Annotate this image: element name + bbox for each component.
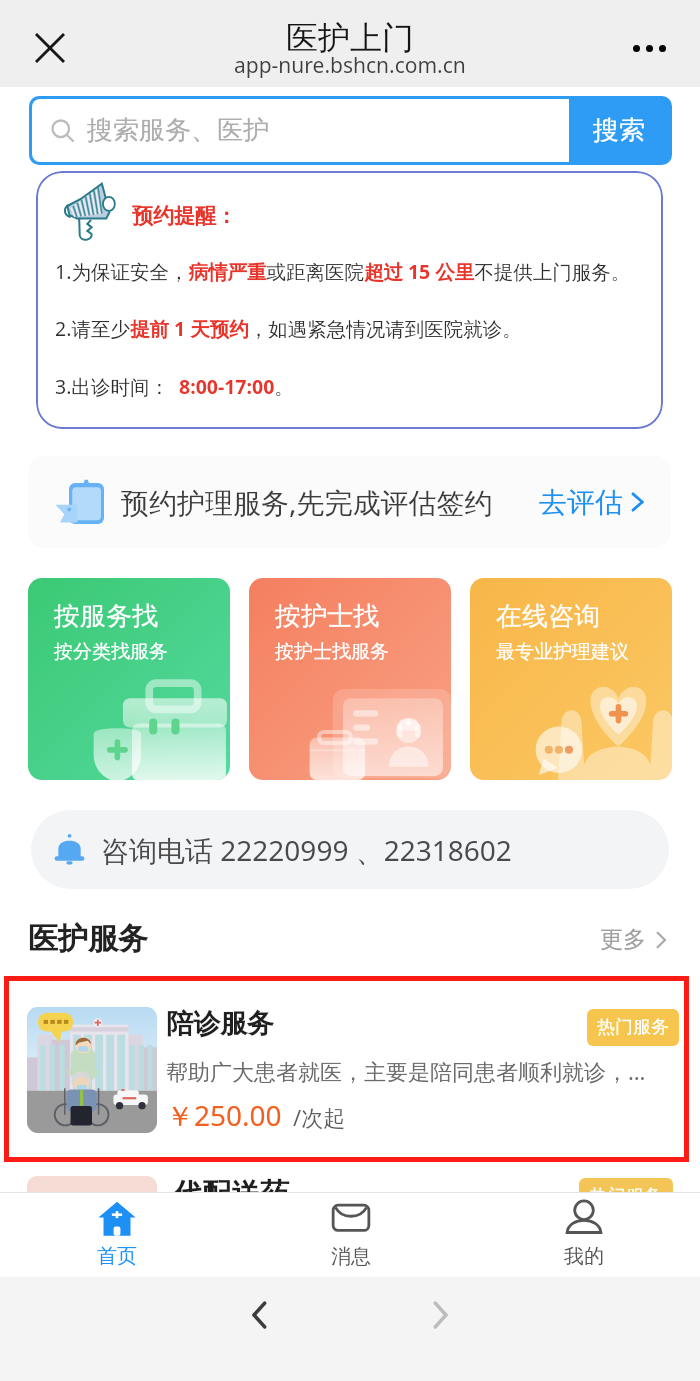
staticText: 医护服务 [28,920,148,958]
button[interactable]: More options [621,20,677,76]
staticText: 热门服务 [590,1185,662,1208]
staticText: app-nure.bshcn.com.cn [234,51,466,80]
staticText: 代配送药 [173,1176,289,1213]
staticText: 我的 [564,1244,604,1269]
button[interactable]: 在线咨询 [470,578,672,780]
staticText: 搜索 [593,114,645,147]
button[interactable]: Forward [410,1285,470,1345]
button[interactable]: 咨询电话 22220999 、22318602 [31,810,669,889]
staticText: 2.请至少提前 1 天预约，如遇紧急情况请到医院就诊。 [55,315,522,342]
staticText: 去评估 [539,485,623,520]
button[interactable]: 消息 [234,1193,467,1277]
button[interactable]: 搜索服务、医护 [32,99,569,162]
button[interactable]: 按护士找 [249,578,451,780]
button[interactable]: 搜索 [569,99,669,162]
button[interactable]: 我的 [467,1193,700,1277]
staticText: 热门服务 [597,1016,669,1039]
staticText: 消息 [331,1244,371,1269]
button[interactable]: Close [22,20,78,76]
staticText: 在线咨询 [496,600,600,633]
staticText: 3.出诊时间： 8:00-17:00。 [55,373,294,400]
staticText: ￥250.00 /次起 [166,1096,346,1134]
staticText: 按分类找服务 [54,640,168,664]
staticText: 预约提醒： [132,203,237,229]
staticText: 更多 [600,925,646,954]
button[interactable]: 按服务找 [28,578,230,780]
button[interactable]: 更多 [594,921,672,958]
button[interactable]: 代配送药 [0,1176,700,1306]
button[interactable]: 预约护理服务,先完成评估签约 [28,456,671,548]
staticText: 医护上门 [286,18,414,58]
button[interactable]: 陪诊服务 [4,976,689,1134]
staticText: 陪诊服务 [166,1007,274,1041]
staticText: 首页 [97,1244,137,1269]
staticText: 咨询电话 22220999 、22318602 [101,831,512,869]
button[interactable]: Back [230,1285,290,1345]
staticText: 按护士找服务 [275,640,389,664]
staticText: 帮助广大患者就医，主要是陪同患者顺利就诊，… [166,1056,646,1086]
staticText: 1.为保证安全，病情严重或距离医院超过 15 公里不提供上门服务。 [55,258,631,285]
staticText: 最专业护理建议 [496,640,629,664]
button[interactable]: 首页 [0,1193,234,1277]
staticText: 按服务找 [54,600,158,633]
staticText: 按护士找 [275,600,379,633]
staticText: 预约护理服务,先完成评估签约 [121,483,493,521]
staticText: 搜索服务、医护 [87,114,269,147]
